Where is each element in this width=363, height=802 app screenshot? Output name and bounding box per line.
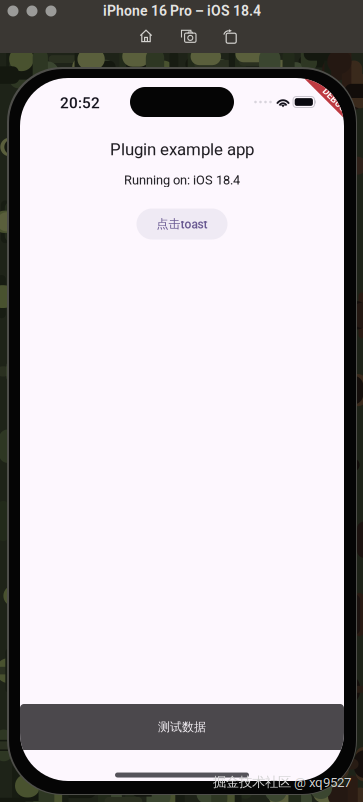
- staticText: iPhone 16 Pro – iOS 18.4: [103, 3, 261, 19]
- button[interactable]: Rotate device: [215, 24, 243, 48]
- staticText: Plugin example app: [110, 140, 254, 159]
- staticText: 20:52: [60, 94, 100, 112]
- button[interactable]: 点击toast: [136, 208, 227, 239]
- staticText: 测试数据: [158, 719, 206, 734]
- button[interactable]: Screenshot: [175, 24, 203, 48]
- staticText: 掘金技术社区 @ xq9527: [213, 774, 351, 790]
- staticText: Running on: iOS 18.4: [124, 172, 240, 187]
- staticText: 点击toast: [156, 216, 207, 231]
- staticText: DEBUG: [320, 95, 349, 106]
- button[interactable]: Home: [132, 24, 160, 48]
